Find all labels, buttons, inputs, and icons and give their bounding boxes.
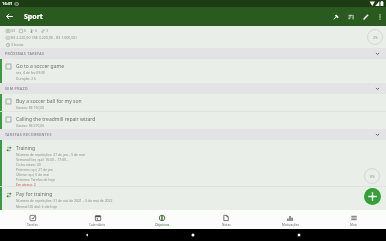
staticText: Gastos: R$ 570,00	[16, 123, 45, 128]
staticText: Duração: 2 h	[16, 76, 37, 81]
staticText: 3 horas	[11, 42, 24, 47]
staticText: Último: qui, 5 de mai	[16, 172, 49, 177]
staticText: R$ 2.220,00 (R$ 3.220,00 - R$ 1.000,00)	[11, 35, 77, 40]
other: Home	[191, 233, 195, 237]
staticText: Notas	[222, 223, 231, 227]
button[interactable]: Buy a soccer ball for my son	[0, 94, 386, 111]
staticText: PRÓXIMAS TAREFAS	[5, 51, 45, 56]
staticText: Primeiro: qui, 27 de jan	[16, 167, 53, 172]
other: Recents	[297, 233, 301, 237]
staticText: Mais	[350, 223, 358, 227]
button[interactable]: Objetivos	[130, 213, 194, 227]
staticText: Go to a soccer game	[16, 63, 64, 70]
button[interactable]: Go to a soccer game	[0, 59, 386, 83]
staticText: Buy a soccer ball for my son	[16, 98, 82, 105]
staticText: Calling the treadmill repair wizard	[16, 116, 96, 123]
staticText: SEM PRAZO	[5, 86, 29, 91]
staticText: Próximo: Tarefas de hoje	[16, 177, 56, 182]
button[interactable]: Edit	[358, 9, 373, 24]
staticText: Calendário	[89, 223, 106, 227]
staticText: Training	[16, 145, 36, 152]
staticText: 8%	[370, 174, 375, 179]
button[interactable]: TAREFAS RECORRENTES	[0, 129, 386, 140]
button[interactable]: Calendário	[65, 213, 130, 227]
button[interactable]: Notas	[194, 213, 258, 227]
staticText: Ciclos totais: 43	[16, 162, 41, 167]
staticText: 6	[24, 28, 27, 33]
button[interactable]: Back	[0, 7, 19, 26]
staticText: 16:01	[2, 1, 13, 7]
staticText: Em atraso: 2	[16, 182, 36, 186]
staticText: Pay for training	[16, 191, 53, 198]
button[interactable]: Sort	[343, 9, 358, 24]
staticText: 3	[46, 28, 49, 33]
staticText: 33	[11, 28, 16, 33]
staticText: Tarefas	[27, 223, 38, 227]
staticText: 2%	[373, 35, 378, 40]
button[interactable]: Mais	[322, 213, 386, 227]
staticText: 6	[35, 28, 38, 33]
button[interactable]: More options	[373, 10, 386, 23]
staticText: sex, 4 de fev 09:00	[16, 70, 46, 75]
button[interactable]: Motivações	[258, 213, 322, 227]
other: Back	[85, 233, 89, 237]
staticText: Mensal (25 dia): é dia hoje	[16, 204, 58, 209]
staticText: Número de repetições: 27 de jan – 5 de m…	[16, 152, 85, 157]
staticText: Sport	[24, 12, 43, 22]
button[interactable]: Training	[0, 140, 386, 186]
staticText: Objetivos	[155, 223, 170, 227]
staticText: Semanal (ter, qui): 16:00 – 17:00...	[16, 157, 69, 162]
button[interactable]: PRÓXIMAS TAREFAS	[0, 48, 386, 59]
button[interactable]: Pin	[328, 9, 343, 24]
button[interactable]: SEM PRAZO	[0, 83, 386, 94]
button[interactable]: Tarefas	[0, 213, 65, 227]
staticText: TAREFAS RECORRENTES	[5, 132, 52, 137]
button[interactable]: Add new goal	[364, 188, 381, 205]
staticText: Número de repetições: 31 de out de 2021 …	[16, 198, 113, 203]
staticText: Motivações	[282, 223, 299, 227]
staticText: Gastos: R$ 150,00	[16, 105, 45, 110]
button[interactable]: Calling the treadmill repair wizard	[0, 112, 386, 129]
button[interactable]: Pay for training	[0, 187, 386, 210]
